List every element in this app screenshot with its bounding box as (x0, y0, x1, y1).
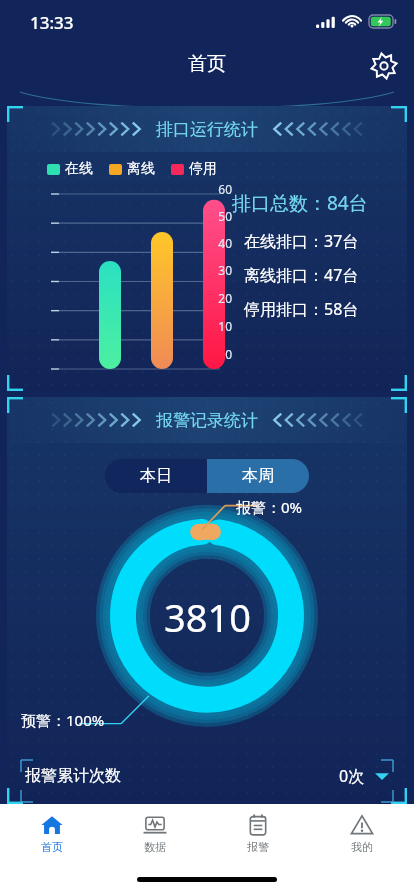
button[interactable]: 首页 (0, 804, 103, 862)
staticText: 本周 (242, 466, 274, 486)
staticText: 我的 (351, 840, 373, 854)
staticText: 数据 (144, 840, 166, 854)
staticText: 报警：0% (236, 497, 303, 517)
staticText: 在线排口：37台 (244, 230, 359, 252)
staticText: 排口总数：84台 (232, 190, 368, 216)
staticText: 50 (198, 208, 232, 224)
button[interactable]: 报警累计次数 (25, 756, 389, 796)
button[interactable]: 数据 (103, 804, 206, 862)
staticText: 本日 (140, 466, 172, 486)
staticText: 报警累计次数 (25, 766, 121, 786)
button[interactable]: 本日 (105, 459, 207, 493)
staticText: 报警记录统计 (156, 410, 258, 431)
staticText: 0次 (339, 765, 365, 787)
staticText: 首页 (188, 52, 226, 76)
staticText: 首页 (41, 840, 63, 854)
staticText: 排口运行统计 (156, 119, 258, 140)
button[interactable]: Settings (368, 50, 400, 82)
staticText: 停用 (189, 160, 217, 178)
staticText: 停用排口：58台 (244, 298, 359, 320)
staticText: 40 (198, 235, 232, 251)
staticText: 3810 (164, 591, 251, 643)
staticText: 离线排口：47台 (244, 264, 359, 286)
staticText: 预警：100% (21, 710, 105, 730)
staticText: 离线 (127, 160, 155, 178)
staticText: 0 (198, 346, 232, 362)
button[interactable]: 我的 (310, 804, 414, 862)
staticText: 60 (198, 181, 232, 197)
staticText: 13:33 (30, 11, 74, 34)
staticText: 报警 (247, 840, 269, 854)
button[interactable]: 报警 (206, 804, 310, 862)
staticText: 在线 (65, 160, 93, 178)
staticText: 30 (198, 262, 232, 278)
button[interactable]: 本周 (207, 459, 309, 493)
staticText: 20 (198, 290, 232, 306)
staticText: 10 (198, 318, 232, 334)
